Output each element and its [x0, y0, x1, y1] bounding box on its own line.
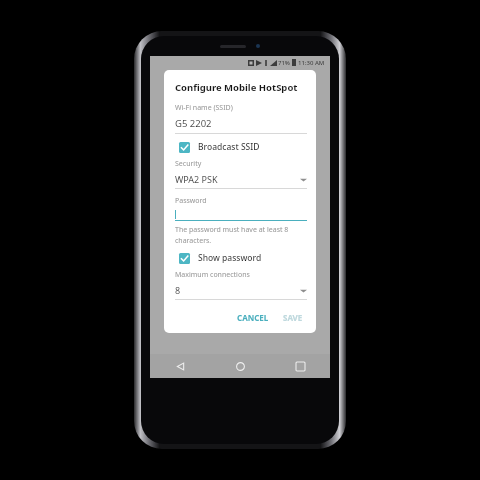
staticText: SAVE [283, 312, 303, 323]
staticText: 8 [175, 284, 181, 296]
button[interactable]: Broadcast SSID [175, 141, 307, 153]
staticText: 11:30 AM [298, 59, 325, 67]
staticText: WPA2 PSK [175, 173, 218, 185]
button[interactable]: Show password [175, 252, 307, 264]
staticText: CANCEL [237, 312, 269, 323]
button[interactable]: CANCEL [233, 309, 273, 326]
staticText: Security [175, 159, 202, 169]
staticText: Maximum connections [175, 270, 250, 280]
staticText: The password must have at least 8 charac… [175, 225, 289, 245]
button[interactable]: Back [150, 354, 210, 378]
button[interactable]: Recents [270, 354, 330, 378]
staticText: Broadcast SSID [198, 141, 260, 153]
button[interactable]: SAVE [279, 309, 307, 326]
button[interactable]: WPA2 PSK [175, 173, 307, 185]
staticText: Configure Mobile HotSpot [175, 81, 298, 94]
button[interactable]: Home [210, 354, 270, 378]
staticText: 71% [278, 59, 290, 67]
staticText: G5 2202 [175, 117, 212, 130]
staticText: Wi-Fi name (SSID) [175, 103, 233, 113]
staticText: Password [175, 196, 207, 206]
button[interactable]: 8 [175, 284, 307, 296]
staticText: Show password [198, 252, 262, 264]
